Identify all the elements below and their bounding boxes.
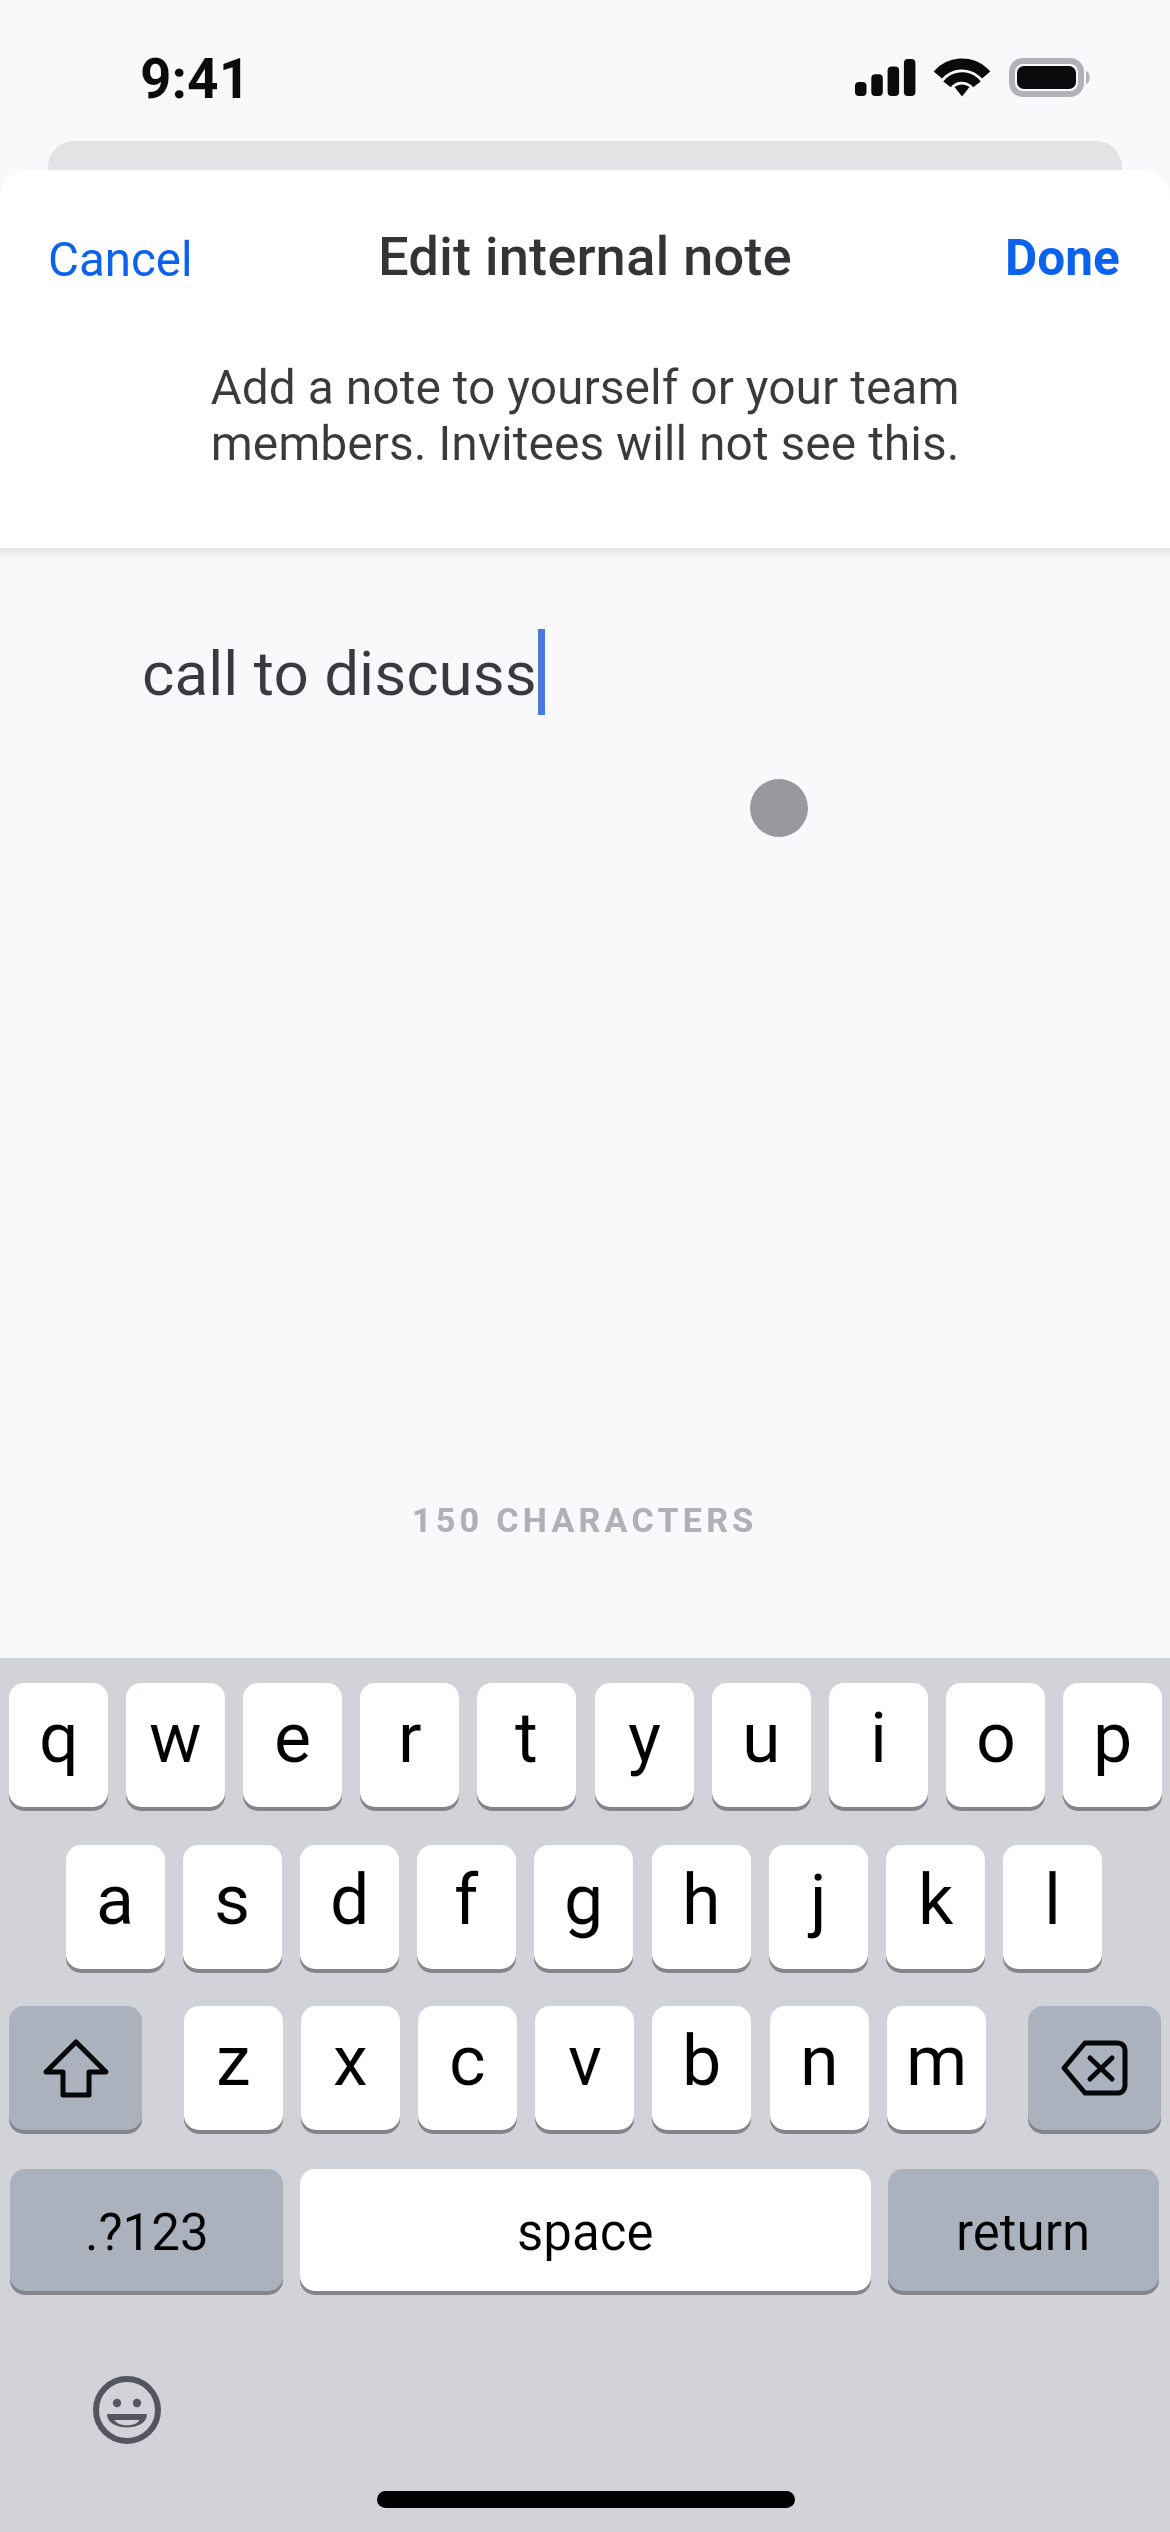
staticText: j [810, 1859, 827, 1941]
staticText: 9:41 [140, 47, 251, 111]
staticText: g [564, 1859, 604, 1941]
button[interactable]: k [886, 1845, 985, 1969]
staticText: Add a note to yourself or your team memb… [100, 359, 1070, 472]
button[interactable]: i [829, 1683, 928, 1807]
button[interactable]: .?123 [10, 2169, 283, 2291]
button[interactable]: Emoji keyboard [93, 2376, 161, 2444]
button[interactable]: x [301, 2006, 400, 2130]
staticText: 150 CHARACTERS [412, 1500, 758, 1540]
staticText: p [1093, 1697, 1133, 1779]
button[interactable]: r [360, 1683, 459, 1807]
staticText: b [682, 2020, 722, 2102]
staticText: e [274, 1697, 312, 1779]
button[interactable]: y [595, 1683, 694, 1807]
button[interactable]: s [183, 1845, 282, 1969]
staticText: space [517, 2203, 654, 2263]
staticText: k [918, 1859, 954, 1941]
staticText: d [330, 1859, 370, 1941]
staticText: z [216, 2020, 251, 2102]
staticText: s [214, 1859, 251, 1941]
button[interactable]: a [66, 1845, 165, 1969]
button[interactable]: z [184, 2006, 283, 2130]
button[interactable]: t [477, 1683, 576, 1807]
staticText: f [454, 1859, 479, 1941]
button[interactable]: Cancel [48, 232, 193, 288]
button[interactable]: Backspace [1028, 2006, 1161, 2130]
staticText: i [870, 1697, 888, 1779]
staticText: Edit internal note [378, 224, 792, 288]
staticText: q [39, 1697, 79, 1779]
button[interactable]: g [534, 1845, 633, 1969]
button[interactable]: b [652, 2006, 751, 2130]
button[interactable]: Done [1005, 229, 1120, 287]
button[interactable]: m [887, 2006, 986, 2130]
staticText: Cancel [48, 232, 193, 288]
staticText: h [682, 1859, 721, 1941]
button[interactable]: j [769, 1845, 868, 1969]
staticText: call to discuss [142, 637, 537, 710]
staticText: r [398, 1697, 422, 1779]
button[interactable]: q [9, 1683, 108, 1807]
staticText: return [956, 2203, 1091, 2263]
staticText: t [515, 1697, 538, 1779]
button[interactable]: v [535, 2006, 634, 2130]
staticText: u [742, 1697, 781, 1779]
button[interactable]: space [300, 2169, 871, 2291]
button[interactable]: u [712, 1683, 811, 1807]
button[interactable]: w [126, 1683, 225, 1807]
button[interactable]: f [417, 1845, 516, 1969]
button[interactable]: d [300, 1845, 399, 1969]
staticText: .?123 [85, 2203, 209, 2263]
staticText: n [800, 2020, 839, 2102]
staticText: l [1044, 1859, 1062, 1941]
staticText: x [333, 2020, 368, 2102]
staticText: m [906, 2020, 968, 2102]
button[interactable]: p [1063, 1683, 1162, 1807]
button[interactable]: h [652, 1845, 751, 1969]
staticText: c [449, 2020, 486, 2102]
button[interactable]: n [770, 2006, 869, 2130]
staticText: o [976, 1697, 1016, 1779]
button[interactable]: c [418, 2006, 517, 2130]
button[interactable]: o [946, 1683, 1045, 1807]
staticText: y [628, 1697, 662, 1779]
button[interactable]: return [888, 2169, 1159, 2291]
staticText: w [149, 1697, 202, 1779]
staticText: Done [1005, 229, 1120, 287]
button[interactable]: l [1003, 1845, 1102, 1969]
button[interactable]: Internal note text field [0, 560, 1170, 1650]
button[interactable]: e [243, 1683, 342, 1807]
staticText: v [568, 2020, 602, 2102]
button[interactable]: Shift [9, 2006, 142, 2130]
staticText: a [96, 1859, 135, 1941]
